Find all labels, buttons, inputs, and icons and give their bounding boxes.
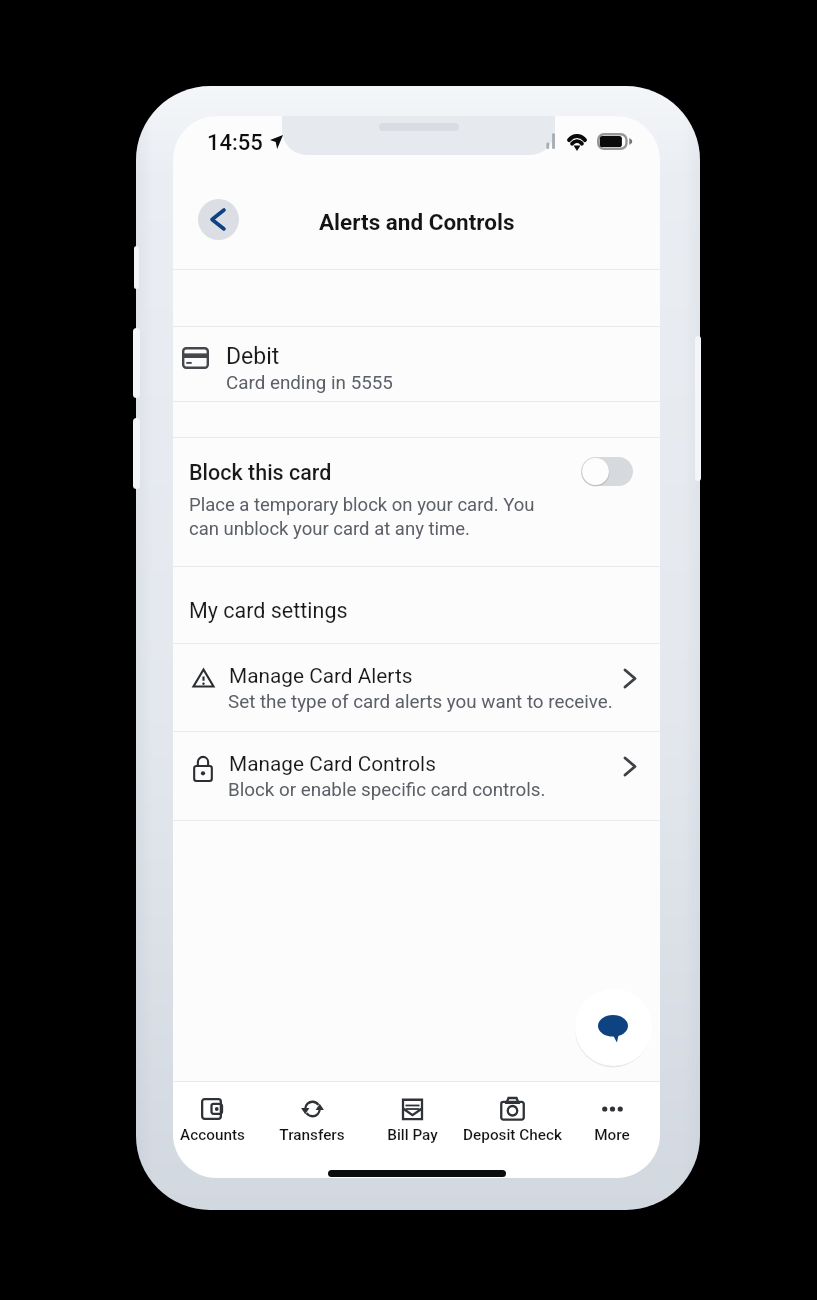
staticText: Place a temporary block on your card. Yo…	[189, 494, 535, 516]
staticText: More	[594, 1126, 630, 1144]
staticText: Deposit Check	[463, 1126, 562, 1144]
button[interactable]: Manage Card Controls	[173, 732, 660, 819]
staticText: Block this card	[189, 460, 332, 485]
staticText: can unblock your card at any time.	[189, 518, 470, 540]
button[interactable]: Chat	[575, 989, 652, 1066]
staticText: My card settings	[189, 598, 348, 623]
button[interactable]: Transfers	[262, 1082, 362, 1162]
button[interactable]: Debit	[173, 327, 660, 401]
staticText: Transfers	[279, 1126, 345, 1144]
staticText: Card ending in 5555	[226, 372, 393, 394]
button[interactable]: More	[562, 1082, 660, 1162]
staticText: Debit	[226, 343, 280, 370]
staticText: Alerts and Controls	[319, 209, 515, 235]
button[interactable]: Deposit Check	[462, 1082, 562, 1162]
staticText: Manage Card Controls	[229, 752, 436, 776]
staticText: Accounts	[180, 1126, 245, 1144]
button[interactable]: Bill Pay	[362, 1082, 462, 1162]
button[interactable]: Manage Card Alerts	[173, 644, 660, 731]
staticText: Block or enable specific card controls.	[228, 779, 546, 801]
staticText: 14:55	[207, 130, 263, 156]
staticText: Set the type of card alerts you want to …	[228, 691, 613, 713]
button[interactable]: Accounts	[173, 1082, 262, 1162]
staticText: Manage Card Alerts	[229, 664, 413, 688]
button[interactable]: Block this card toggle	[581, 457, 633, 486]
button[interactable]: Back	[198, 199, 239, 240]
staticText: Bill Pay	[387, 1126, 438, 1144]
